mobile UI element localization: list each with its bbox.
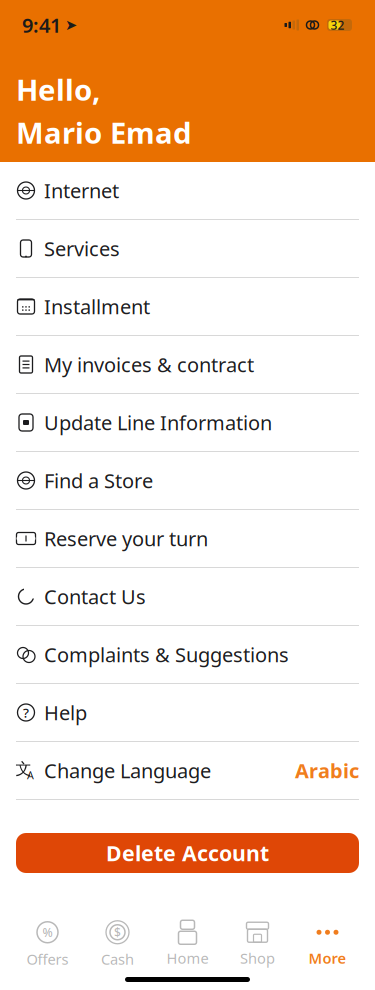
staticText: A — [27, 768, 34, 782]
button[interactable]: Complaints & Suggestions — [0, 626, 375, 683]
button[interactable]: Services — [0, 220, 375, 277]
staticText: $ — [114, 924, 121, 940]
staticText: 32 — [330, 17, 344, 33]
staticText: Home — [166, 948, 208, 968]
staticText: % — [42, 924, 52, 940]
button[interactable]: Contact Us — [0, 568, 375, 625]
staticText: Update Line Information — [44, 409, 272, 436]
button[interactable]: Home — [152, 919, 222, 969]
button[interactable]: Reserve your turn — [0, 510, 375, 567]
staticText: Cash — [101, 949, 134, 969]
button[interactable]: Internet — [0, 162, 375, 219]
staticText: 9:41 — [22, 12, 61, 38]
button[interactable]: More — [292, 919, 362, 969]
staticText: Delete Account — [106, 839, 269, 867]
button[interactable]: Update Line Information — [0, 394, 375, 451]
staticText: My invoices & contract — [44, 351, 254, 378]
button[interactable]: Installment — [0, 278, 375, 335]
button[interactable]: % — [12, 919, 82, 969]
staticText: Help — [44, 699, 87, 726]
button[interactable]: Shop — [222, 919, 292, 969]
staticText: Arabic — [295, 757, 359, 784]
button[interactable]: $ — [82, 919, 152, 969]
staticText: Installment — [44, 293, 150, 320]
staticText: More — [308, 948, 346, 968]
staticText: Shop — [240, 948, 275, 968]
button[interactable]: My invoices & contract — [0, 336, 375, 393]
staticText: Find a Store — [44, 467, 153, 494]
staticText: Offers — [26, 949, 68, 969]
staticText: Change Language — [44, 757, 211, 784]
staticText: Reserve your turn — [44, 525, 208, 552]
button[interactable]: Delete Account — [16, 833, 359, 873]
staticText: Mario Emad — [16, 113, 192, 152]
button[interactable]: ? — [0, 684, 375, 741]
staticText: 文 — [15, 759, 31, 779]
staticText: Hello, — [16, 70, 100, 109]
staticText: Complaints & Suggestions — [44, 641, 289, 668]
staticText: ? — [23, 704, 29, 721]
staticText: Services — [44, 235, 120, 262]
staticText: Internet — [44, 177, 119, 204]
button[interactable]: Find a Store — [0, 452, 375, 509]
staticText: ➤ — [65, 17, 77, 33]
staticText: Contact Us — [44, 583, 146, 610]
button[interactable]: 文 — [0, 742, 375, 799]
